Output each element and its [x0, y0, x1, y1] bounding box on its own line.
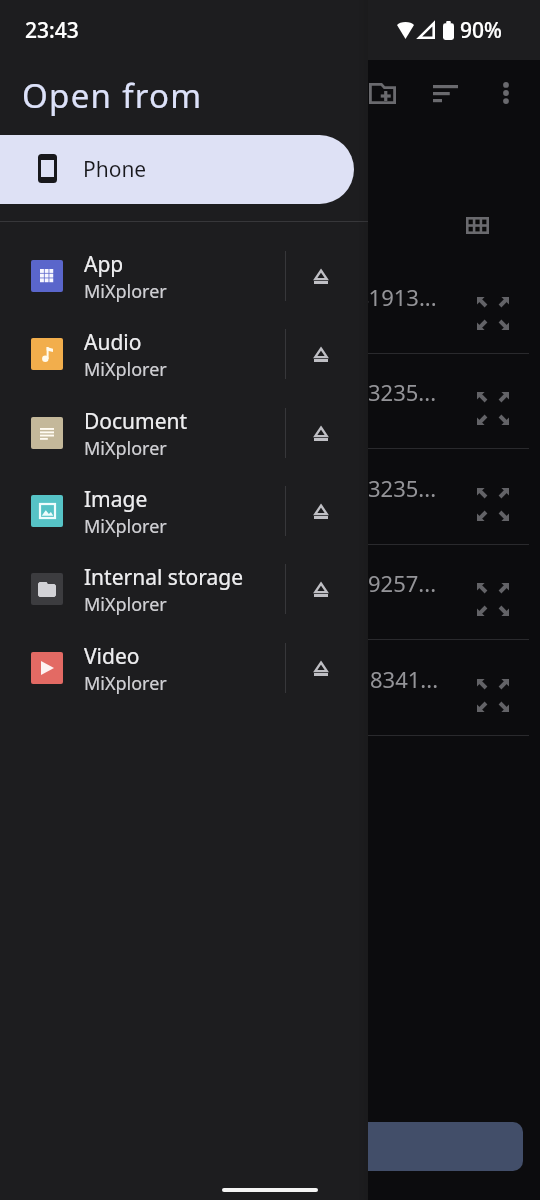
button[interactable]: Phone [0, 135, 354, 204]
button[interactable]: Eject Document [286, 394, 355, 472]
button[interactable]: Eject Video [286, 629, 355, 707]
button[interactable]: Grid view [454, 202, 500, 248]
button[interactable]: Video [0, 629, 368, 707]
button[interactable]: Internal storage [0, 550, 368, 628]
staticText: 3235... [368, 377, 437, 407]
button[interactable]: Eject Image [286, 472, 355, 550]
staticText: MiXplorer [84, 279, 167, 304]
staticText: MiXplorer [84, 357, 167, 382]
button[interactable]: App [0, 237, 368, 315]
button[interactable]: Eject Audio [286, 315, 355, 393]
staticText: MiXplorer [84, 592, 167, 617]
staticText: Internal storage [84, 563, 243, 592]
staticText: Phone [83, 155, 147, 184]
button[interactable]: Sort [421, 69, 469, 117]
button[interactable]: Eject App [286, 237, 355, 315]
staticText: 8341... [370, 664, 439, 694]
button[interactable]: New folder [358, 69, 406, 117]
button[interactable]: More options [482, 69, 530, 117]
button[interactable]: Document [0, 394, 368, 472]
staticText: Audio [84, 328, 142, 357]
staticText: Image [84, 485, 148, 514]
staticText: MiXplorer [84, 671, 167, 696]
staticText: Document [84, 407, 188, 436]
staticText: App [84, 250, 124, 279]
staticText: 23:43 [25, 16, 79, 45]
button[interactable]: Image [0, 472, 368, 550]
staticText: Video [84, 642, 140, 671]
staticText: Open from [22, 73, 203, 118]
button[interactable]: Audio [0, 315, 368, 393]
staticText: 3235... [368, 473, 437, 503]
staticText: MiXplorer [84, 436, 167, 461]
staticText: 90% [460, 16, 502, 45]
staticText: MiXplorer [84, 514, 167, 539]
button[interactable]: Eject Internal storage [286, 550, 355, 628]
button[interactable]: Select [300, 1122, 523, 1171]
staticText: 41913... [356, 282, 437, 312]
staticText: 9257... [368, 568, 437, 598]
